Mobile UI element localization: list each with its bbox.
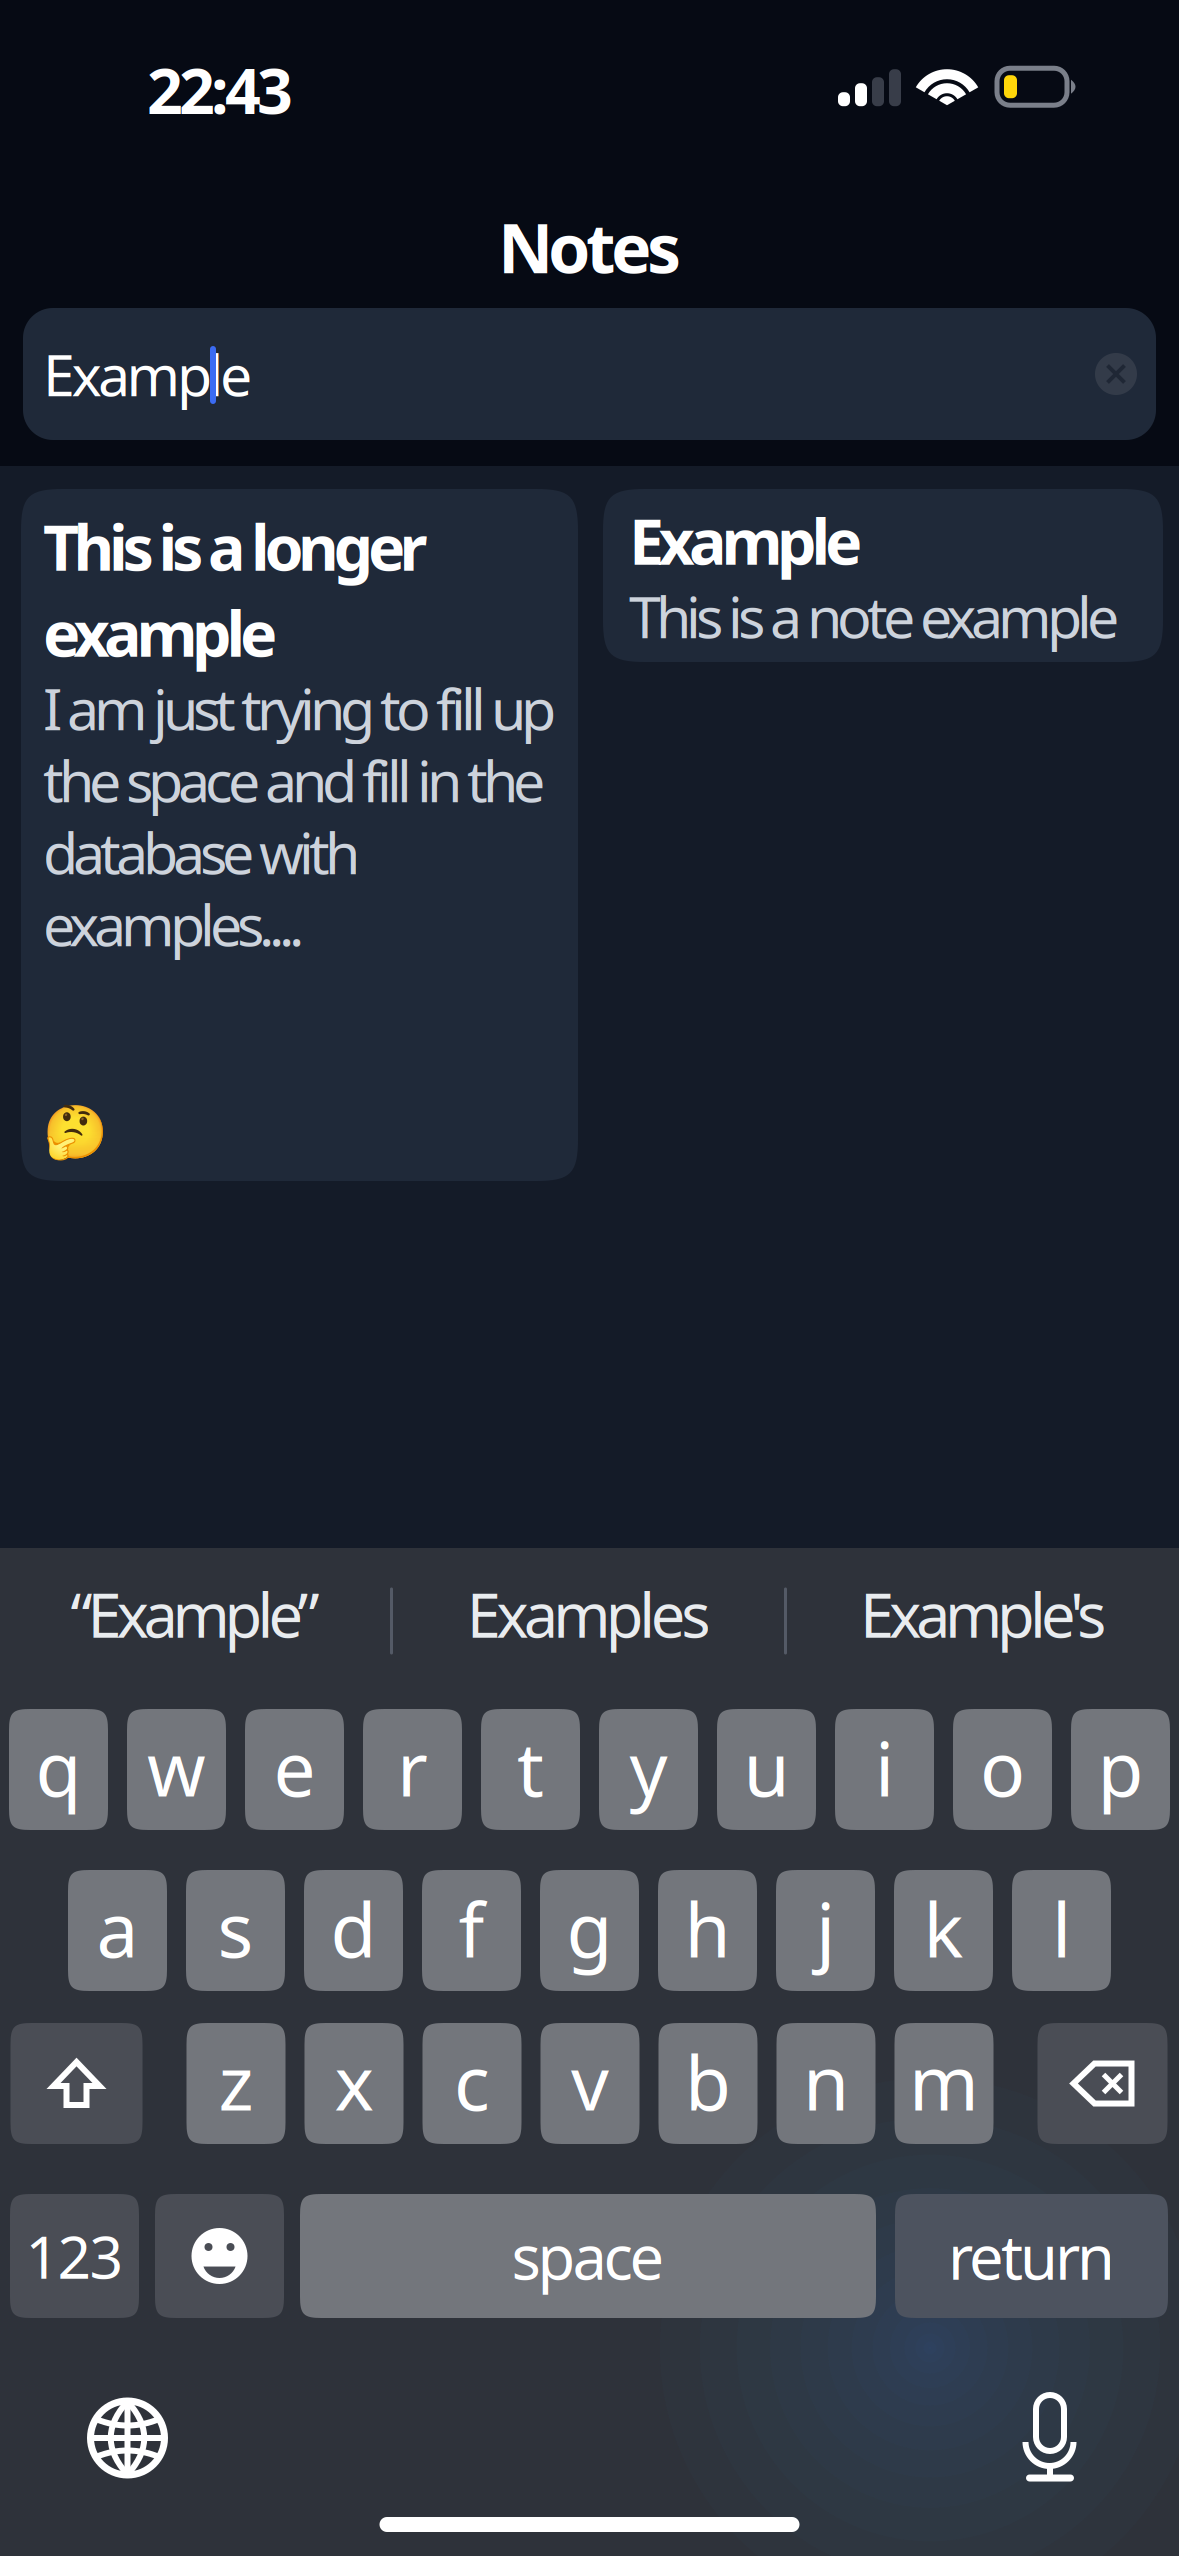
button[interactable] <box>776 1870 875 1991</box>
staticText: r <box>397 1718 428 1817</box>
button[interactable]: Emoji <box>155 2194 284 2318</box>
staticText: 22:43 <box>147 48 293 131</box>
button[interactable] <box>304 1870 403 1991</box>
staticText: “Example” <box>70 1573 319 1655</box>
staticText: Notes <box>498 202 681 292</box>
button[interactable] <box>245 1709 344 1830</box>
button[interactable]: Shift <box>10 2023 142 2144</box>
staticText: Example <box>43 336 252 412</box>
button[interactable]: Example <box>23 308 1156 440</box>
staticText: k <box>923 1879 963 1978</box>
button[interactable] <box>127 1709 226 1830</box>
staticText: n <box>803 2032 849 2131</box>
button[interactable] <box>540 2023 639 2144</box>
staticText: This is a note example <box>629 578 1119 654</box>
staticText: p <box>1097 1718 1143 1817</box>
staticText: space <box>511 2215 664 2297</box>
staticText: Examples <box>467 1573 710 1655</box>
staticText: h <box>684 1879 730 1978</box>
staticText: j <box>816 1879 835 1978</box>
staticText: y <box>629 1718 667 1817</box>
button[interactable] <box>300 2194 876 2318</box>
staticText: q <box>35 1718 81 1817</box>
button[interactable] <box>953 1709 1052 1830</box>
button[interactable] <box>894 1870 993 1991</box>
button[interactable] <box>599 1709 698 1830</box>
staticText: t <box>517 1718 544 1817</box>
button[interactable] <box>895 2194 1168 2318</box>
staticText: examples.... <box>43 886 304 962</box>
button[interactable] <box>835 1709 934 1830</box>
button[interactable] <box>9 1709 108 1830</box>
button[interactable] <box>717 1709 816 1830</box>
button[interactable]: Delete <box>1037 2023 1167 2144</box>
staticText: f <box>458 1879 484 1978</box>
button[interactable]: Dictation <box>1022 2395 1078 2481</box>
button[interactable] <box>422 1870 521 1991</box>
button[interactable] <box>776 2023 875 2144</box>
button[interactable] <box>186 1870 285 1991</box>
staticText: example <box>43 591 277 674</box>
button[interactable] <box>894 2023 993 2144</box>
staticText: the space and fill in the <box>43 742 545 818</box>
staticText: z <box>218 2032 253 2131</box>
button[interactable] <box>422 2023 521 2144</box>
button[interactable]: This is a longer <box>21 489 578 1181</box>
button[interactable] <box>68 1870 167 1991</box>
staticText: g <box>566 1879 612 1978</box>
staticText: database with <box>43 814 360 890</box>
staticText: m <box>909 2032 979 2131</box>
button[interactable] <box>304 2023 403 2144</box>
staticText: a <box>96 1879 138 1978</box>
staticText: l <box>1052 1879 1071 1978</box>
staticText: x <box>334 2032 373 2131</box>
staticText: I am just trying to fill up <box>43 670 556 746</box>
staticText: w <box>147 1718 206 1817</box>
button[interactable] <box>10 2194 139 2318</box>
button[interactable] <box>658 2023 757 2144</box>
staticText: i <box>875 1718 894 1817</box>
staticText: 123 <box>25 2217 123 2295</box>
button[interactable]: Examples <box>393 1548 784 1680</box>
button[interactable] <box>1012 1870 1111 1991</box>
staticText: u <box>743 1718 789 1817</box>
button[interactable] <box>481 1709 580 1830</box>
staticText: This is a longer <box>43 505 427 588</box>
staticText: o <box>980 1718 1025 1817</box>
button[interactable] <box>186 2023 285 2144</box>
staticText: s <box>217 1879 253 1978</box>
staticText: Example <box>629 499 862 582</box>
button[interactable]: “Example” <box>0 1548 390 1680</box>
button[interactable] <box>658 1870 757 1991</box>
button[interactable] <box>363 1709 462 1830</box>
staticText: v <box>571 2032 609 2131</box>
button[interactable]: Switch keyboard <box>87 2397 168 2478</box>
button[interactable]: Example's <box>787 1548 1179 1680</box>
staticText: d <box>330 1879 376 1978</box>
staticText: e <box>273 1718 315 1817</box>
staticText: 🤔 <box>43 1103 108 1162</box>
staticText: c <box>454 2032 490 2131</box>
button[interactable] <box>1071 1709 1170 1830</box>
button[interactable] <box>540 1870 639 1991</box>
staticText: return <box>948 2215 1115 2297</box>
staticText: Example's <box>860 1573 1106 1655</box>
button[interactable]: Example <box>603 489 1163 662</box>
staticText: b <box>685 2032 731 2131</box>
